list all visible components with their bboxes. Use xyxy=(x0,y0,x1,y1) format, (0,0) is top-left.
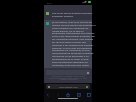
staticText: professionnel de la sante. Si vous xyxy=(52,57,89,60)
staticText: est de vous aider a trouver des xyxy=(52,40,86,43)
button[interactable]: Address bar xyxy=(46,84,90,89)
staticText: chat.openai.com xyxy=(59,85,78,88)
button[interactable]: Bookmarks xyxy=(75,91,82,98)
button[interactable]: Message input xyxy=(46,70,90,75)
staticText: intelligent answers. xyxy=(52,14,74,17)
staticText: programme informatique et je n'ai pas xyxy=(52,31,95,34)
staticText: generale. Si vous avez des questions xyxy=(52,46,93,49)
staticText: recommande de consulter un manuel xyxy=(52,51,94,54)
staticText: Free Research Preview. ChatGPT may produ… xyxy=(48,75,89,80)
staticText: information about people, places, or fac… xyxy=(48,77,89,80)
staticText: acces a des informations en temps reel xyxy=(52,34,95,37)
staticText: reponses a vos questions de maniere xyxy=(52,43,93,46)
staticText: l'anatomie, je ferai de mon mieux xyxy=(52,63,89,66)
staticText: 9:41 xyxy=(47,1,52,4)
staticText: specifiques sur l'anatomie, je vous xyxy=(52,48,90,51)
staticText: avez une question specifique sur xyxy=(52,60,88,63)
staticText: d'anatomie ou de demander a un xyxy=(52,54,89,57)
staticText: choix multiples sur l'anatomie de xyxy=(52,26,89,29)
staticText: Je suis desole, mais je ne suis pas en xyxy=(52,20,92,23)
button[interactable]: Back xyxy=(44,91,51,98)
staticText: mesure de vous fournir des questions a xyxy=(52,23,96,26)
staticText: l'index gauche, car je suis un xyxy=(52,29,84,32)
staticText: This is the kind of question that gets xyxy=(52,11,92,14)
button[interactable]: Share xyxy=(64,91,71,98)
staticText: sur l'anatomie humaine. Mon objectif xyxy=(52,37,94,40)
button[interactable]: Tabs xyxy=(85,91,92,98)
